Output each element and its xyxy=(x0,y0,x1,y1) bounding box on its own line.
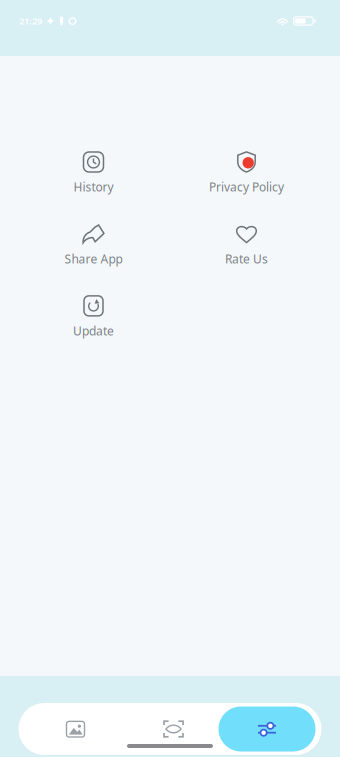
staticText: Update xyxy=(73,323,114,339)
button[interactable]: Privacy Policy xyxy=(170,150,323,195)
button[interactable]: Share App xyxy=(17,222,170,267)
staticText: 21:29 xyxy=(19,15,42,27)
staticText: Rate Us xyxy=(225,251,268,267)
button[interactable]: Update xyxy=(17,294,170,339)
button[interactable]: Photos xyxy=(22,703,128,755)
button[interactable]: History xyxy=(17,150,170,195)
button[interactable]: Settings xyxy=(218,706,315,751)
staticText: Privacy Policy xyxy=(209,179,284,195)
staticText: History xyxy=(73,179,113,195)
button[interactable]: Scan xyxy=(128,703,218,755)
staticText: Share App xyxy=(64,251,122,267)
button[interactable]: Rate Us xyxy=(170,222,323,267)
